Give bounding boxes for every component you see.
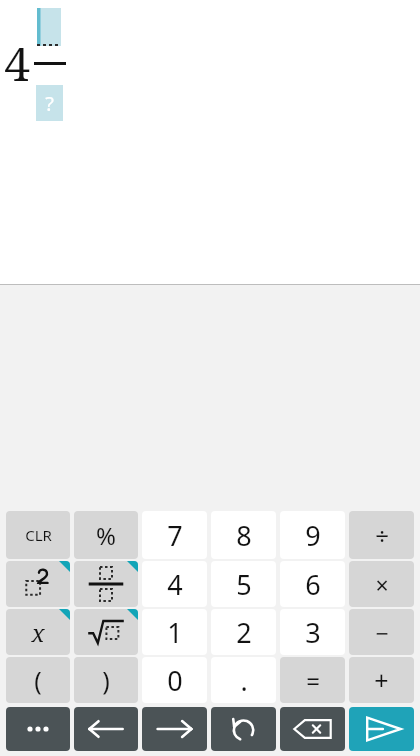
staticText: 3	[305, 614, 321, 651]
staticText: 0	[167, 662, 183, 699]
button[interactable]: 3	[280, 609, 345, 655]
button[interactable]: %	[74, 511, 138, 559]
staticText: CLR	[25, 525, 52, 545]
staticText: 2	[236, 614, 252, 651]
staticText: .	[240, 662, 248, 699]
staticText: 4	[167, 566, 183, 603]
button[interactable]: x	[6, 609, 70, 655]
button[interactable]: Move left	[74, 707, 138, 751]
button[interactable]: )	[74, 657, 138, 703]
staticText: (	[34, 663, 42, 697]
button[interactable]: −	[349, 609, 414, 655]
button[interactable]: 8	[211, 511, 276, 559]
staticText: %	[96, 519, 116, 552]
button[interactable]: Denominator placeholder	[36, 85, 63, 121]
staticText: ÷	[375, 519, 389, 552]
button[interactable]: Numerator	[37, 8, 61, 46]
button[interactable]: Undo	[211, 707, 276, 751]
staticText: 6	[305, 566, 321, 603]
staticText: x	[31, 616, 45, 649]
staticText: +	[374, 663, 389, 697]
button[interactable]: Square root	[74, 609, 138, 655]
button[interactable]: Fraction	[74, 561, 138, 607]
button[interactable]: 9	[280, 511, 345, 559]
button[interactable]: ÷	[349, 511, 414, 559]
button[interactable]: 4	[142, 561, 207, 607]
staticText: 5	[236, 566, 252, 603]
staticText: ?	[45, 90, 54, 117]
button[interactable]: Move right	[142, 707, 207, 751]
button[interactable]: 1	[142, 609, 207, 655]
button[interactable]: Backspace	[280, 707, 345, 751]
button[interactable]: 6	[280, 561, 345, 607]
button[interactable]: 2	[211, 609, 276, 655]
button[interactable]: More options	[6, 707, 70, 751]
button[interactable]: 7	[142, 511, 207, 559]
staticText: 4	[4, 32, 30, 95]
button[interactable]: 5	[211, 561, 276, 607]
staticText: ×	[375, 569, 389, 600]
button[interactable]: Square	[6, 561, 70, 607]
staticText: =	[306, 664, 320, 697]
button[interactable]: .	[211, 657, 276, 703]
staticText: 8	[236, 517, 252, 554]
button[interactable]: ×	[349, 561, 414, 607]
button[interactable]: Submit	[349, 707, 414, 751]
staticText: )	[102, 663, 110, 697]
staticText: 1	[167, 614, 183, 651]
staticText: 7	[167, 517, 183, 554]
button[interactable]: (	[6, 657, 70, 703]
button[interactable]: CLR	[6, 511, 70, 559]
staticText: 9	[305, 517, 321, 554]
button[interactable]: 0	[142, 657, 207, 703]
staticText: −	[375, 617, 389, 648]
button[interactable]: =	[280, 657, 345, 703]
button[interactable]: +	[349, 657, 414, 703]
